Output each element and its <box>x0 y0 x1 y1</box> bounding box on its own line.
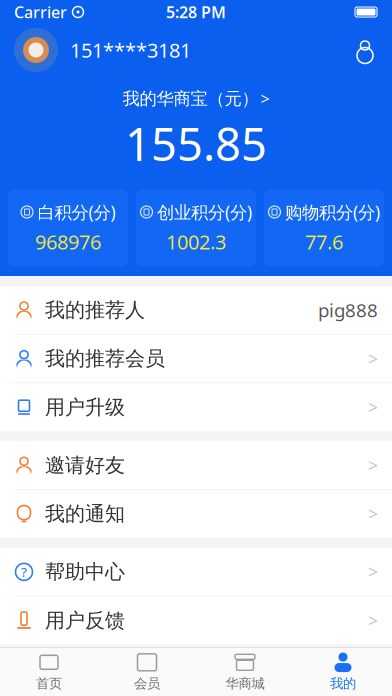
staticText: 华商城 <box>225 675 264 692</box>
button[interactable]: 我的推荐人 <box>0 286 392 334</box>
staticText: 购物积分(分) <box>285 200 380 223</box>
staticText: 我的推荐人 <box>45 298 145 322</box>
staticText: 白积分(分) <box>37 200 115 223</box>
button[interactable]: 我的华商宝（元） <box>122 88 269 109</box>
button[interactable]: 购物积分(分) <box>264 189 384 266</box>
staticText: 我的通知 <box>45 502 125 526</box>
button[interactable]: ? <box>0 548 392 596</box>
button[interactable]: Account <box>352 37 378 63</box>
staticText: 设置 <box>45 666 85 691</box>
staticText: 我的推荐会员 <box>45 346 165 371</box>
staticText: > <box>368 347 378 370</box>
staticText: 151****3181 <box>70 37 191 63</box>
button[interactable]: 用户升级 <box>0 383 392 431</box>
button[interactable]: 华商城 <box>196 647 294 696</box>
staticText: > <box>368 502 378 525</box>
staticText: 邀请好友 <box>45 453 125 478</box>
staticText: 77.6 <box>305 228 343 255</box>
button[interactable]: 白积分(分) <box>8 189 128 266</box>
staticText: 用户升级 <box>45 395 125 420</box>
staticText: > <box>260 88 269 109</box>
staticText: > <box>368 560 378 583</box>
staticText: 1002.3 <box>166 228 226 255</box>
button[interactable]: 我的通知 <box>0 490 392 538</box>
button[interactable]: 我的推荐会员 <box>0 335 392 383</box>
staticText: > <box>368 454 378 477</box>
button[interactable]: 我的 <box>294 647 392 696</box>
staticText: 帮助中心 <box>45 560 125 584</box>
staticText: > <box>368 396 378 419</box>
staticText: 我的 <box>330 675 356 692</box>
button[interactable]: 用户反馈 <box>0 596 392 644</box>
button[interactable]: 创业积分(分) <box>136 189 256 266</box>
staticText: 5:28 PM <box>166 1 226 23</box>
staticText: 创业积分(分) <box>157 200 252 223</box>
staticText: 用户反馈 <box>45 608 125 633</box>
staticText: > <box>368 609 378 632</box>
staticText: 968976 <box>35 228 101 255</box>
staticText: ? <box>21 563 27 581</box>
staticText: 首页 <box>36 675 62 692</box>
staticText: 155.85 <box>125 113 267 173</box>
button[interactable]: 首页 <box>0 647 98 696</box>
staticText: pig888 <box>318 298 378 322</box>
button[interactable]: 会员 <box>98 647 196 696</box>
button[interactable]: 邀请好友 <box>0 441 392 489</box>
button[interactable]: 设置 <box>0 654 392 696</box>
staticText: 我的华商宝（元） <box>122 88 258 109</box>
staticText: Carrier <box>14 1 67 23</box>
staticText: 会员 <box>134 675 160 692</box>
